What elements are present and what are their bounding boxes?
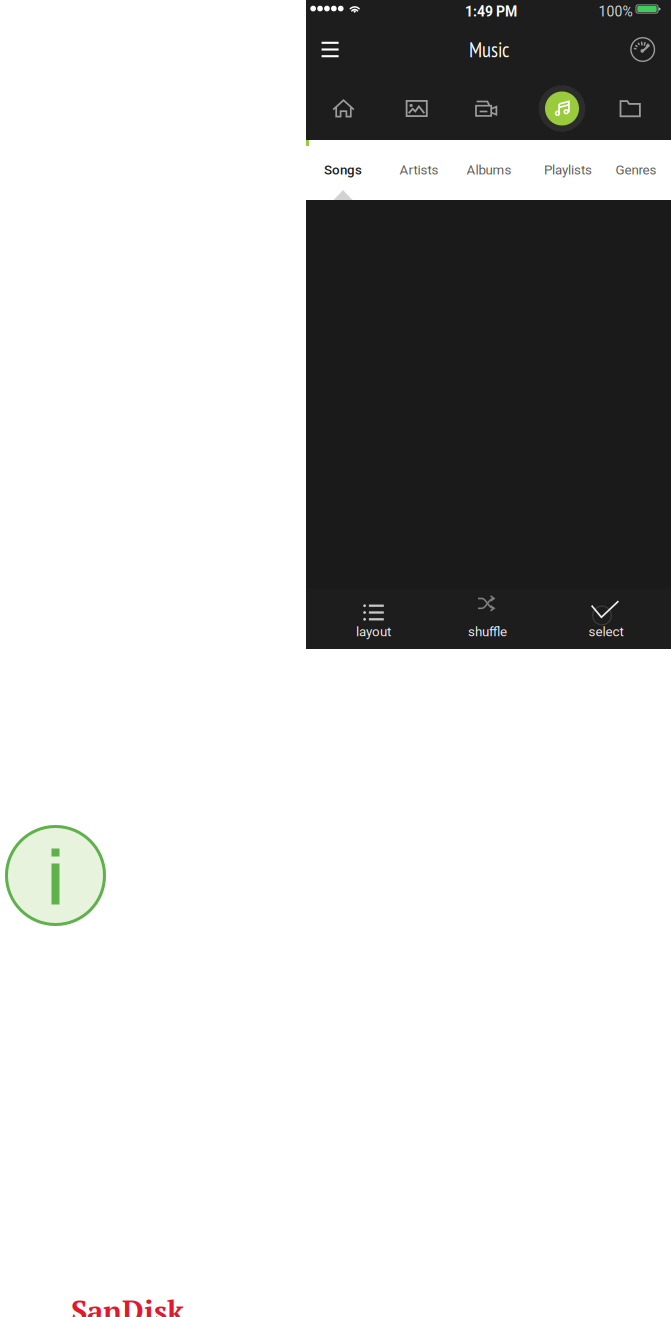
button[interactable]: Information [5,825,106,926]
staticText: 100% [598,3,632,20]
button[interactable]: Files [605,77,655,140]
button[interactable]: Artists [384,140,454,200]
button[interactable]: Dashboard [622,22,664,77]
staticText: layout [356,624,391,640]
staticText: 1:49 PM [465,3,517,20]
button[interactable]: Photos [392,77,442,140]
button[interactable]: Genres [601,140,671,200]
staticText: Music [469,36,509,63]
staticText: Albums [466,162,511,178]
staticText: Playlists [544,162,592,178]
button[interactable]: shuffle [432,589,542,649]
button[interactable]: Playlists [533,140,603,200]
button[interactable]: layout [318,589,428,649]
button[interactable]: Music [537,77,587,140]
staticText: Songs [324,162,362,178]
button[interactable]: Menu [309,22,351,77]
button[interactable]: Home [318,77,368,140]
staticText: shuffle [468,624,507,640]
button[interactable]: Songs [308,140,378,200]
button[interactable]: Videos [461,77,511,140]
button[interactable]: Albums [454,140,524,200]
button[interactable]: select [551,589,661,649]
staticText: Genres [615,162,656,178]
staticText: SanDisk [71,1291,184,1317]
staticText: Artists [399,162,438,178]
staticText: select [588,624,623,640]
